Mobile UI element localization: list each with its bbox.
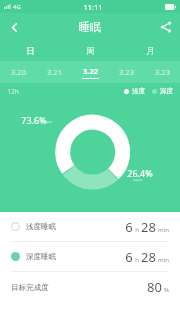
button[interactable]: 浅度睡眠 [0,212,180,241]
staticText: 周 [86,46,95,57]
staticText: 28 [141,248,156,266]
staticText: 日 [26,46,35,57]
staticText: 浅度睡眠 [26,222,56,231]
button[interactable]: 日 [0,41,60,61]
button[interactable]: 3.22 [72,61,108,83]
staticText: 28 [141,218,156,236]
staticText: min [158,256,169,264]
staticText: 26.4% [127,167,153,179]
staticText: % [164,286,169,294]
staticText: 6 [125,248,133,266]
staticText: h [135,226,139,234]
button[interactable]: 3.21 [36,61,72,83]
staticText: 睡眠 [79,20,101,34]
button[interactable]: Back [0,13,28,41]
button[interactable]: Share [152,13,180,41]
staticText: 浅度 [132,87,145,95]
button[interactable]: 3.23 [108,61,144,83]
button[interactable]: 3.23 [144,61,180,83]
button[interactable]: 3.20 [0,61,36,83]
staticText: 深度睡眠 [26,252,56,261]
button[interactable]: 深度睡眠 [0,242,180,271]
staticText: 12h [7,87,19,96]
staticText: min [158,226,169,234]
staticText: 3.23 [119,67,134,77]
staticText: 73.6% [21,114,47,126]
staticText: 3.20 [11,67,26,77]
button[interactable]: 目标完成度 [0,272,180,302]
button[interactable]: 月 [120,41,180,61]
staticText: 3.23 [155,67,170,77]
staticText: 月 [146,46,155,57]
staticText: 80 [147,278,162,296]
staticText: 4G [13,3,21,11]
staticText: 6 [125,218,133,236]
staticText: 3.21 [47,67,62,77]
staticText: 目标完成度 [11,283,49,292]
staticText: h [135,256,139,264]
staticText: 3.22 [83,66,98,76]
staticText: 深度 [160,87,173,95]
staticText: 11:11 [83,2,103,12]
button[interactable]: 周 [60,41,120,61]
